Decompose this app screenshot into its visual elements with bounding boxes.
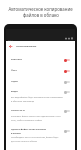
- button[interactable]: Контакты: [6, 54, 75, 65]
- button[interactable]: Off: [63, 129, 70, 133]
- staticText: Автокопирование: [16, 45, 37, 48]
- button[interactable]: Off: [63, 90, 70, 94]
- staticText: Удалять файлы после загрузки в облако: [11, 128, 47, 134]
- staticText: 9:41: [8, 38, 13, 41]
- button[interactable]: Back: [6, 41, 75, 52]
- staticText: Аудио: [11, 80, 18, 83]
- staticText: файлов в облако: [23, 12, 59, 18]
- staticText: Все видеофайлы будут автоматически скопи…: [11, 96, 63, 102]
- button[interactable]: Фото: [6, 65, 75, 76]
- staticText: Только Wi-Fi: [11, 109, 25, 112]
- button[interactable]: Только Wi-Fi: [6, 106, 75, 121]
- other: Back: [9, 45, 12, 48]
- button[interactable]: Аудио: [6, 76, 75, 87]
- staticText: Видео: [11, 90, 18, 93]
- button[interactable]: Off: [63, 80, 70, 84]
- button[interactable]: Off: [63, 109, 70, 113]
- button[interactable]: Видео: [6, 87, 75, 102]
- button[interactable]: On: [63, 58, 70, 62]
- staticText: Фото: [11, 69, 17, 72]
- staticText: Контакты: [11, 58, 22, 61]
- button[interactable]: On: [63, 69, 70, 73]
- staticText: Загружать файлы только при подключении к…: [11, 115, 61, 121]
- staticText: Освобождает место на устройстве, файлы б…: [11, 136, 59, 142]
- button[interactable]: Удалять файлы после загрузки в облако: [6, 125, 75, 142]
- staticText: Автоматическое копирование: [8, 6, 73, 12]
